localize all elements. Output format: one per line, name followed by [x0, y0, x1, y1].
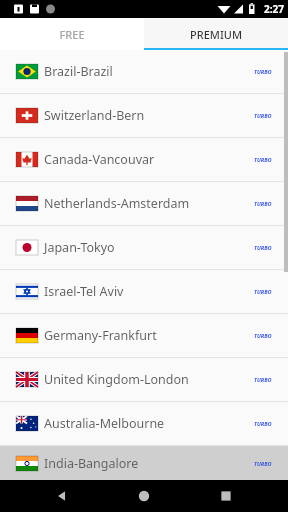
staticText: Japan-Tokyo: [44, 239, 115, 256]
button[interactable]: Netherlands-Amsterdam: [0, 182, 288, 225]
button[interactable]: Home: [124, 480, 164, 512]
staticText: TURBO: [254, 420, 272, 427]
staticText: TURBO: [254, 200, 272, 207]
staticText: Switzerland-Bern: [44, 107, 145, 124]
staticText: TURBO: [254, 244, 272, 251]
staticText: TURBO: [254, 376, 272, 383]
button[interactable]: Recent apps: [206, 480, 246, 512]
staticText: TURBO: [254, 332, 272, 339]
staticText: Canada-Vancouvar: [44, 151, 155, 168]
button[interactable]: Canada-Vancouvar: [0, 138, 288, 181]
staticText: Israel-Tel Aviv: [44, 283, 124, 300]
staticText: TURBO: [254, 288, 272, 295]
staticText: 2:27: [264, 2, 284, 16]
staticText: TURBO: [254, 112, 272, 119]
button[interactable]: Israel-Tel Aviv: [0, 270, 288, 313]
button[interactable]: Back: [42, 480, 82, 512]
button[interactable]: United Kingdom-London: [0, 358, 288, 401]
button[interactable]: FREE: [0, 18, 144, 50]
staticText: United Kingdom-London: [44, 371, 189, 388]
staticText: TURBO: [254, 460, 272, 467]
staticText: Netherlands-Amsterdam: [44, 195, 190, 212]
staticText: Germany-Frankfurt: [44, 327, 157, 344]
button[interactable]: Brazil-Brazil: [0, 50, 288, 93]
staticText: Brazil-Brazil: [44, 63, 113, 80]
button[interactable]: PREMIUM: [144, 18, 288, 50]
button[interactable]: Switzerland-Bern: [0, 94, 288, 137]
staticText: India-Bangalore: [44, 455, 139, 472]
staticText: PREMIUM: [190, 27, 242, 42]
button[interactable]: Japan-Tokyo: [0, 226, 288, 269]
button[interactable]: Australia-Melbourne: [0, 402, 288, 445]
staticText: TURBO: [254, 156, 272, 163]
staticText: Australia-Melbourne: [44, 415, 165, 432]
staticText: TURBO: [254, 68, 272, 75]
button[interactable]: Germany-Frankfurt: [0, 314, 288, 357]
staticText: FREE: [59, 27, 85, 42]
button[interactable]: India-Bangalore: [0, 446, 288, 480]
